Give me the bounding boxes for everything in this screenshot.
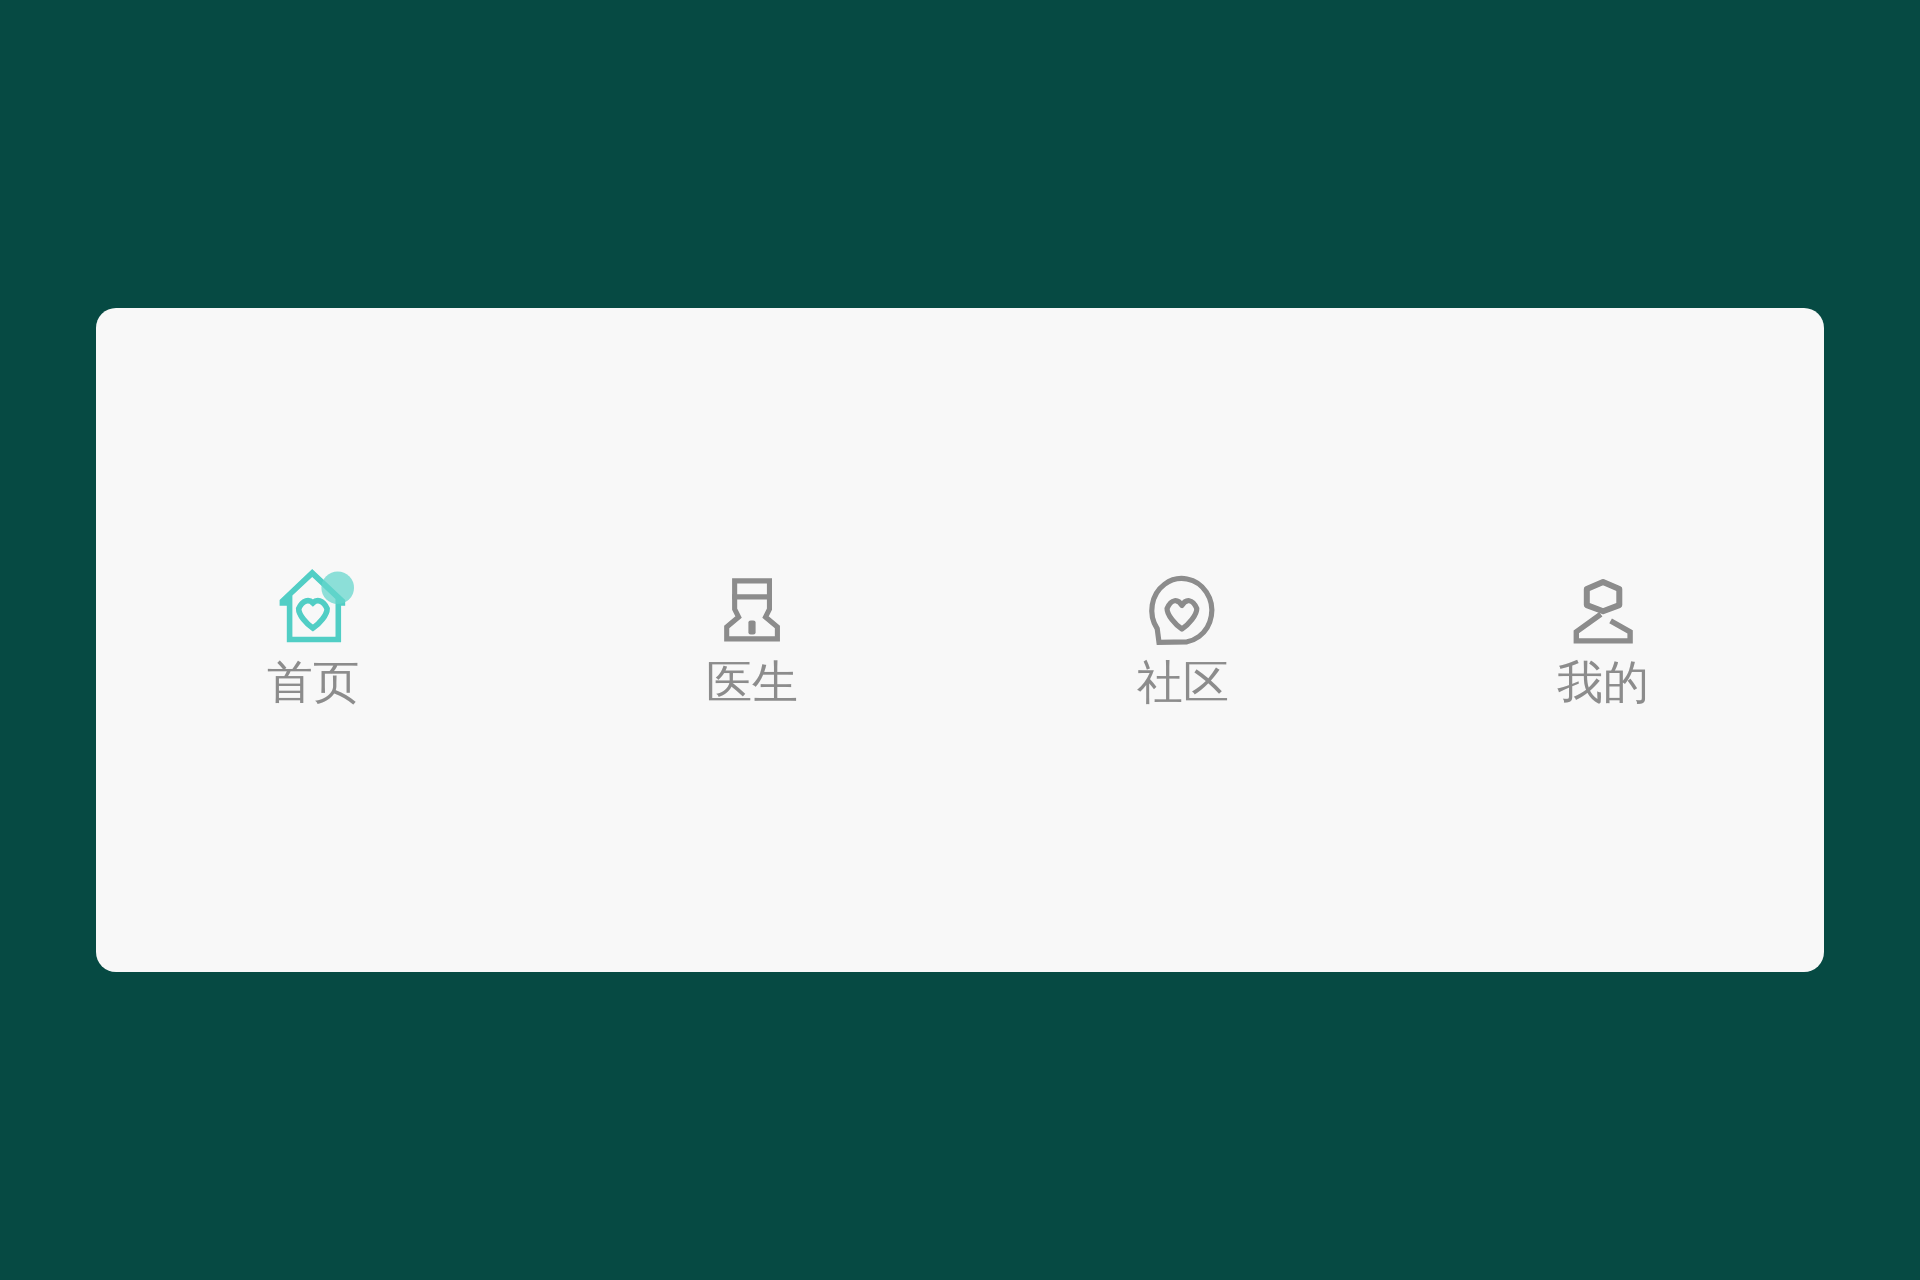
button[interactable]: 我的	[1393, 308, 1824, 972]
staticText: 首页	[267, 654, 359, 712]
button[interactable]: 首页	[96, 308, 532, 972]
staticText: 社区	[1137, 654, 1229, 712]
button[interactable]: 医生	[532, 308, 967, 972]
staticText: 我的	[1557, 654, 1649, 712]
button[interactable]: 社区	[967, 308, 1393, 972]
staticText: 医生	[706, 654, 798, 712]
